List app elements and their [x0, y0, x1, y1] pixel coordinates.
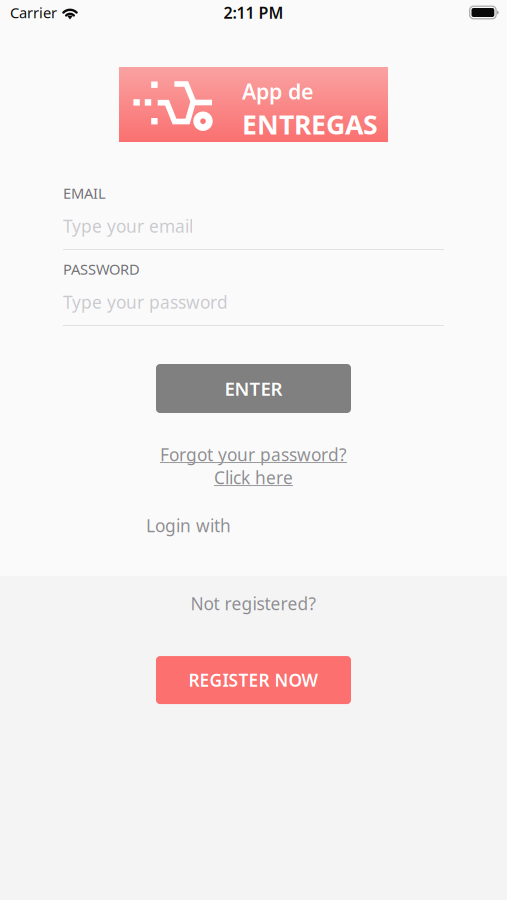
staticText: ENTREGAS	[242, 106, 378, 142]
staticText: REGISTER NOW	[188, 669, 318, 692]
staticText: Type your password	[63, 290, 228, 313]
staticText: Click here	[214, 466, 293, 489]
staticText: Type your email	[63, 214, 193, 237]
button[interactable]: REGISTER NOW	[156, 656, 351, 704]
button[interactable]: ENTER	[156, 364, 351, 413]
button[interactable]: Forgot your password?	[160, 443, 347, 489]
staticText: ENTER	[224, 376, 282, 401]
staticText: App de	[242, 77, 313, 105]
staticText: Carrier	[10, 3, 57, 22]
staticText: EMAIL	[63, 183, 106, 203]
staticText: Login with	[146, 514, 231, 537]
staticText: Forgot your password?	[160, 443, 347, 466]
staticText: Not registered?	[190, 592, 316, 615]
staticText: 2:11 PM	[223, 2, 283, 23]
staticText: PASSWORD	[63, 259, 140, 279]
